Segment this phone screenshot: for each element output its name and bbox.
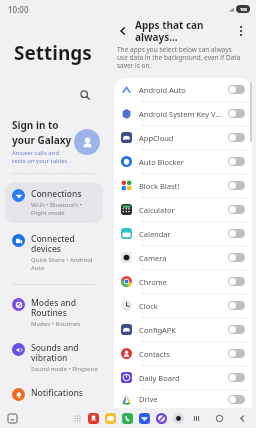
button[interactable]: App 0 bbox=[87, 412, 99, 424]
button[interactable]: Auto Blocker bbox=[114, 150, 252, 173]
button[interactable]: AppCloud bbox=[114, 126, 252, 149]
button[interactable]: Toggle background data bbox=[228, 301, 245, 310]
button[interactable]: Toggle background data bbox=[228, 373, 245, 382]
button[interactable]: Toggle background data bbox=[228, 205, 245, 214]
staticText: Apps that can always... bbox=[135, 18, 232, 44]
staticText: Auto Blocker bbox=[139, 157, 224, 167]
staticText: 100 bbox=[240, 7, 247, 12]
staticText: Android System Key Veri.. bbox=[139, 109, 224, 119]
button[interactable]: App 2 bbox=[121, 412, 133, 424]
staticText: texts on your tablet. bbox=[12, 157, 69, 165]
button[interactable]: Toggle background data bbox=[228, 325, 245, 334]
button[interactable]: Toggle background data bbox=[228, 229, 245, 238]
button[interactable]: App 4 bbox=[155, 412, 167, 424]
button[interactable]: Recents bbox=[191, 413, 202, 424]
button[interactable]: Chrome bbox=[114, 270, 252, 293]
button[interactable]: Calculator bbox=[114, 198, 252, 221]
staticText: Block Blast! bbox=[139, 181, 224, 191]
staticText: Calendar bbox=[139, 229, 224, 239]
button[interactable]: Home bbox=[214, 413, 225, 424]
button[interactable]: Drive bbox=[114, 390, 252, 408]
button[interactable]: Clock bbox=[114, 294, 252, 317]
staticText: Calculator bbox=[139, 205, 224, 215]
button[interactable]: Toggle background data bbox=[228, 109, 245, 118]
button[interactable]: Modes and Routines bbox=[5, 291, 103, 334]
staticText: Contacts bbox=[139, 349, 224, 359]
button[interactable]: Toggle background data bbox=[228, 181, 245, 190]
button[interactable]: Toggle background data bbox=[228, 349, 245, 358]
staticText: Connected devices bbox=[31, 233, 98, 255]
staticText: Camera bbox=[139, 253, 224, 263]
button[interactable]: App 5 bbox=[172, 412, 184, 424]
button[interactable]: Sounds and vibration bbox=[5, 336, 103, 379]
staticText: Sounds and vibration bbox=[31, 342, 98, 364]
button[interactable]: More options bbox=[232, 22, 250, 40]
staticText: 10:00 bbox=[8, 4, 29, 15]
staticText: The apps you select below can always use… bbox=[117, 45, 244, 70]
staticText: Sign in to bbox=[12, 118, 59, 132]
button[interactable]: Contacts bbox=[114, 342, 252, 365]
button[interactable]: Android Auto bbox=[114, 78, 252, 101]
button[interactable]: Toggle background data bbox=[228, 253, 245, 262]
staticText: Modes and Routines bbox=[31, 297, 98, 319]
staticText: Chrome bbox=[139, 277, 224, 287]
button[interactable]: Calendar bbox=[114, 222, 252, 245]
staticText: AppCloud bbox=[139, 133, 224, 143]
button[interactable]: Back bbox=[237, 413, 248, 424]
staticText: Settings bbox=[14, 40, 92, 66]
staticText: Modes • Routines bbox=[31, 320, 81, 328]
button[interactable]: Search settings bbox=[0, 84, 108, 106]
staticText: Sound mode • Ringtone bbox=[31, 365, 98, 373]
button[interactable]: All apps bbox=[72, 413, 82, 423]
button[interactable]: Back bbox=[114, 22, 132, 40]
staticText: Quick Share • Android Auto bbox=[31, 256, 98, 272]
staticText: your Galaxy bbox=[12, 133, 72, 147]
staticText: Connections bbox=[31, 188, 82, 200]
staticText: Answer calls and bbox=[12, 149, 60, 157]
button[interactable]: Toggle background data bbox=[228, 395, 245, 404]
button[interactable]: Sign in to bbox=[0, 116, 108, 171]
button[interactable]: Toggle background data bbox=[228, 85, 245, 94]
staticText: Clock bbox=[139, 301, 224, 311]
staticText: Android Auto bbox=[139, 85, 224, 95]
button[interactable]: Toggle background data bbox=[228, 157, 245, 166]
button[interactable]: Connected devices bbox=[5, 227, 103, 278]
staticText: Drive bbox=[139, 394, 224, 404]
button[interactable]: Toggle background data bbox=[228, 277, 245, 286]
button[interactable]: Daily Board bbox=[114, 366, 252, 389]
button[interactable]: Android System Key Veri.. bbox=[114, 102, 252, 125]
button[interactable]: App 1 bbox=[104, 412, 116, 424]
staticText: Notifications bbox=[31, 387, 83, 399]
staticText: Wi-Fi • Bluetooth • Flight mode bbox=[31, 201, 98, 217]
button[interactable]: Camera bbox=[114, 246, 252, 269]
staticText: ConfigAPK bbox=[139, 325, 224, 335]
button[interactable]: ConfigAPK bbox=[114, 318, 252, 341]
button[interactable]: Toggle background data bbox=[228, 133, 245, 142]
button[interactable]: App 3 bbox=[138, 412, 150, 424]
button[interactable]: Block Blast! bbox=[114, 174, 252, 197]
button[interactable]: Recent apps tray bbox=[6, 412, 18, 424]
staticText: Daily Board bbox=[139, 373, 224, 383]
button[interactable]: Notifications bbox=[5, 381, 103, 408]
button[interactable]: Connections bbox=[5, 182, 103, 223]
